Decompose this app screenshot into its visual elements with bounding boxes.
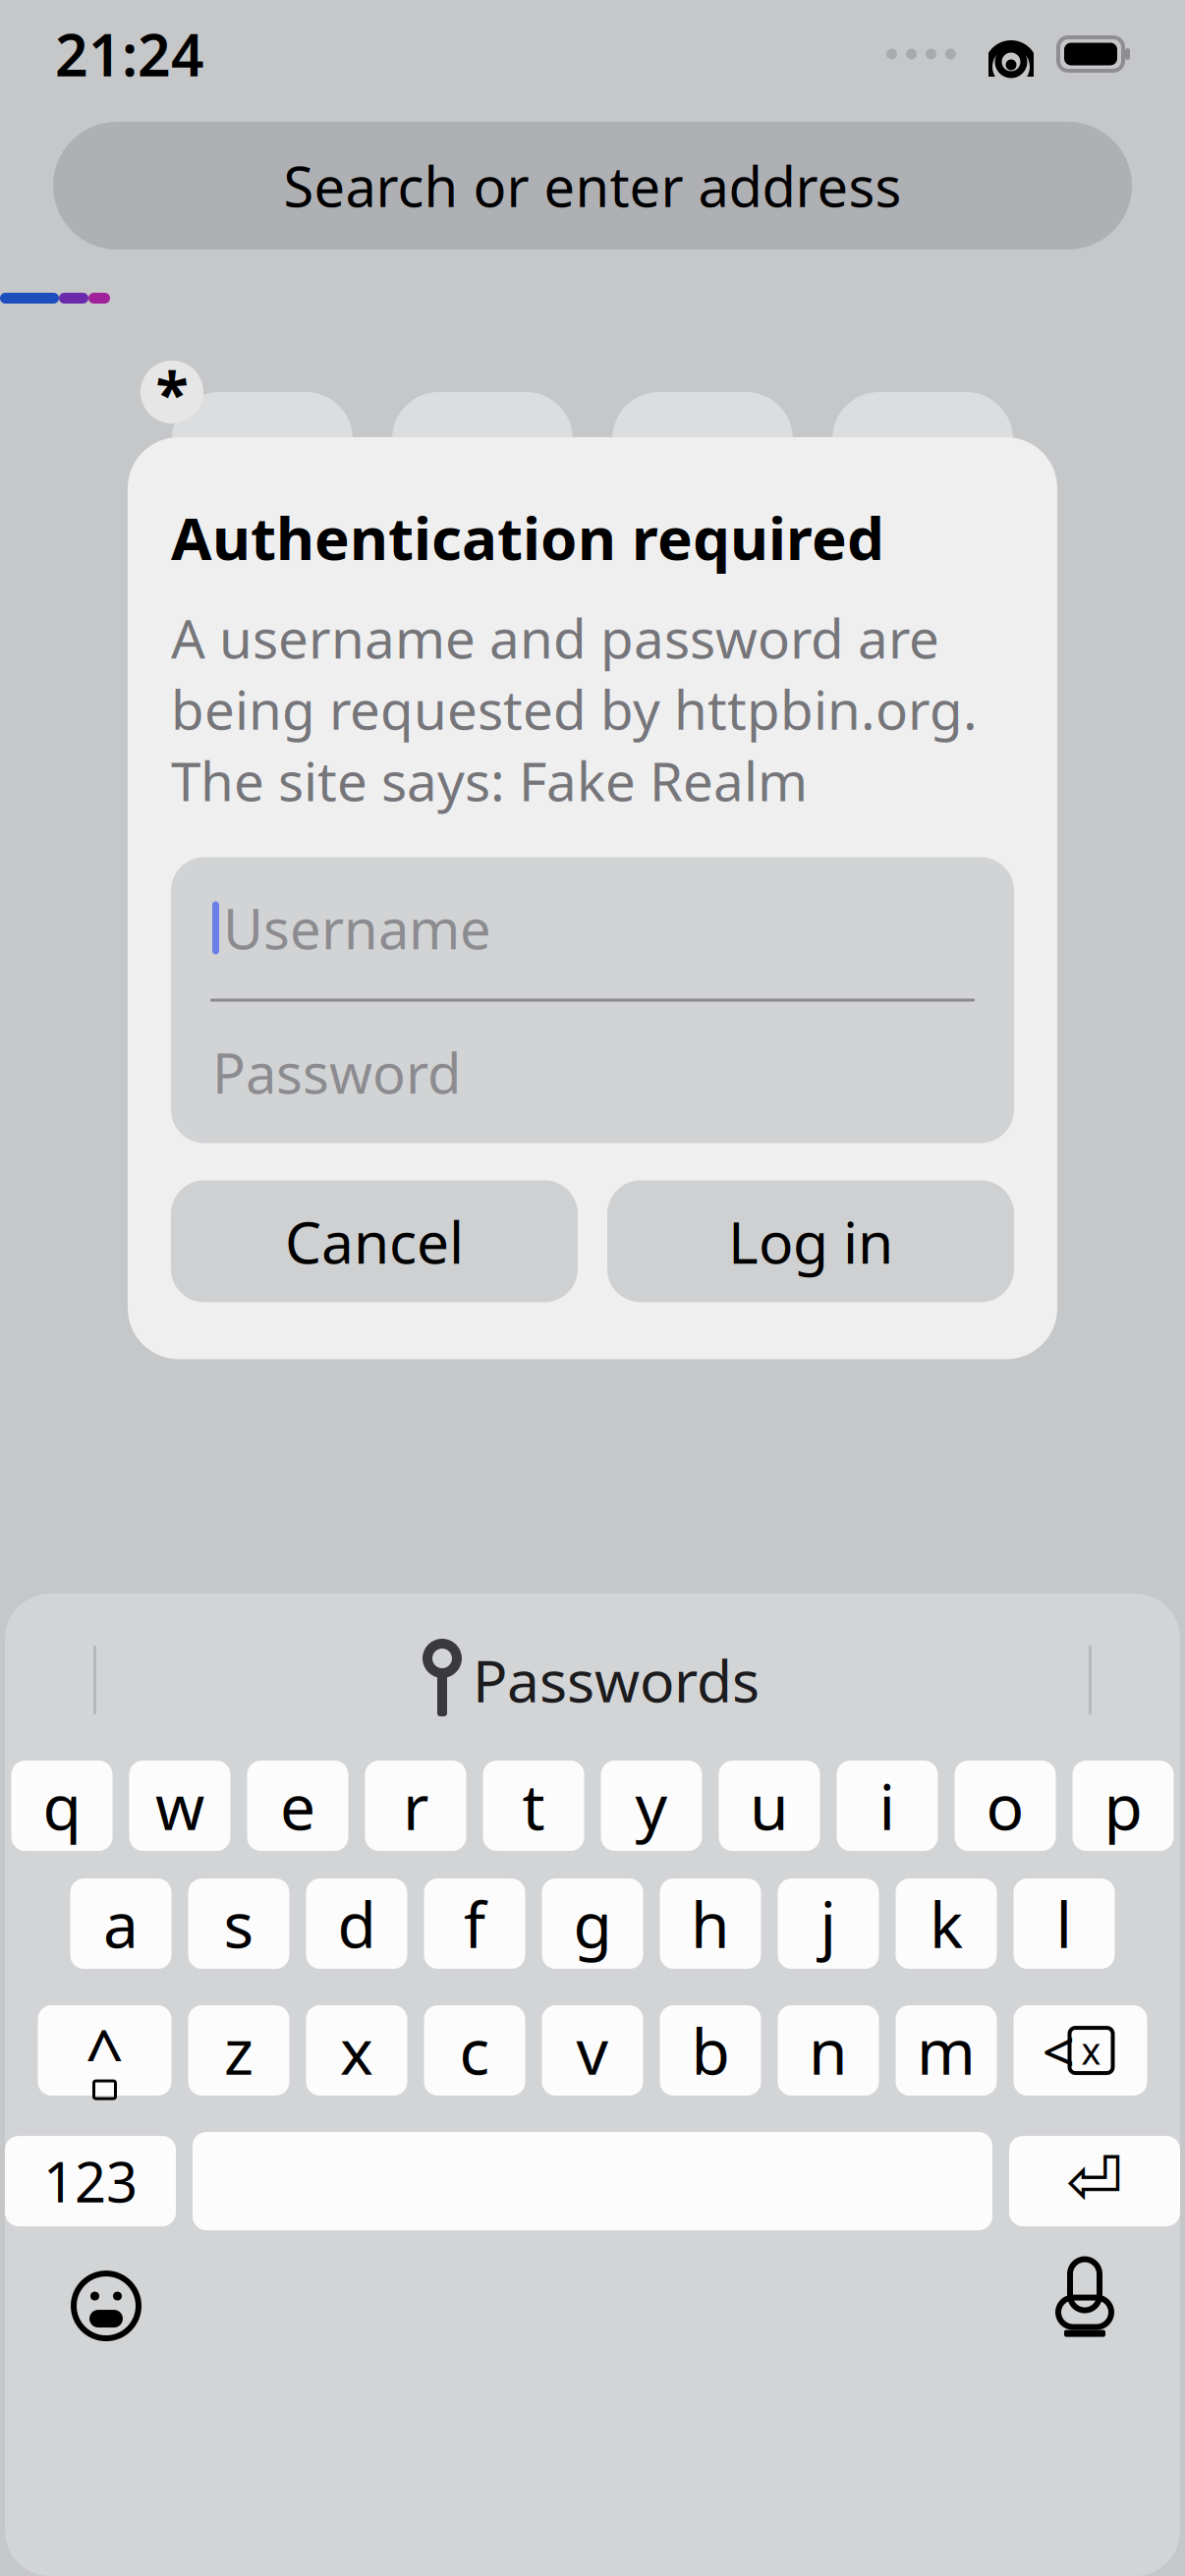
staticText: Cancel	[285, 1203, 464, 1280]
button[interactable]: y	[601, 1761, 702, 1851]
staticText: Google	[196, 590, 329, 643]
staticText: Password	[212, 1036, 461, 1109]
button[interactable]: h	[660, 1878, 761, 1969]
button[interactable]: 123	[5, 2136, 176, 2226]
staticText: k	[930, 1882, 963, 1965]
staticText: s	[224, 1882, 254, 1965]
button[interactable]: Search or enter address	[53, 122, 1132, 250]
staticText: h	[691, 1882, 730, 1965]
button[interactable]: b	[660, 2005, 761, 2096]
staticText: <	[1042, 2012, 1075, 2089]
staticText: y	[635, 1764, 668, 1848]
staticText: *	[156, 352, 188, 432]
button[interactable]: u	[719, 1761, 820, 1851]
button[interactable]: Delete	[1014, 2005, 1147, 2096]
staticText: Passwords	[473, 1642, 760, 1718]
staticText: z	[224, 2009, 254, 2092]
staticText: 21:24	[55, 16, 204, 92]
button[interactable]: Dictation	[1058, 2264, 1111, 2348]
staticText: Authentication required	[171, 498, 884, 576]
staticText: j	[820, 1882, 837, 1965]
staticText: o	[986, 1764, 1024, 1848]
staticText: Log in	[728, 1203, 893, 1280]
staticText: f	[464, 1882, 485, 1965]
button[interactable]: i	[837, 1761, 938, 1851]
button[interactable]: m	[896, 2005, 997, 2096]
staticText: i	[879, 1764, 896, 1848]
staticText: ^	[85, 2008, 124, 2099]
button[interactable]: a	[70, 1878, 171, 1969]
button[interactable]: Username field	[171, 857, 1014, 999]
button[interactable]: g	[542, 1878, 643, 1969]
button[interactable]: Passwords	[425, 1642, 760, 1718]
button[interactable]: Shift	[38, 1996, 171, 2105]
staticText: n	[809, 2009, 848, 2092]
button[interactable]: q	[11, 1761, 113, 1851]
button[interactable]: r	[365, 1761, 466, 1851]
button[interactable]: c	[424, 2005, 525, 2096]
staticText: l	[1056, 1882, 1072, 1965]
staticText: a	[103, 1882, 139, 1965]
staticText: q	[43, 1764, 81, 1848]
staticText: Wikipedia	[172, 882, 352, 935]
button[interactable]: Cancel	[171, 1180, 578, 1302]
staticText: Search or enter address	[283, 149, 902, 222]
staticText: t	[522, 1764, 545, 1848]
button[interactable]: k	[896, 1878, 997, 1969]
button[interactable]: z	[188, 2005, 289, 2096]
staticText: m	[917, 2009, 976, 2092]
staticText: p	[1104, 1764, 1142, 1848]
button[interactable]: p	[1072, 1761, 1174, 1851]
staticText: Yahoo	[425, 590, 539, 643]
button[interactable]: f	[424, 1878, 525, 1969]
button[interactable]: Return	[1009, 2136, 1180, 2226]
staticText: Bing	[660, 590, 745, 643]
button[interactable]: Password field	[171, 1002, 1014, 1143]
staticText: x	[1081, 2026, 1101, 2075]
button[interactable]: t	[483, 1761, 584, 1851]
staticText: x	[340, 2009, 373, 2092]
button[interactable]: Emoji	[74, 2274, 139, 2338]
button[interactable]: d	[306, 1878, 407, 1969]
staticText: Username	[223, 891, 491, 964]
button[interactable]: j	[778, 1878, 879, 1969]
staticText: d	[338, 1882, 376, 1965]
staticText: c	[459, 2009, 490, 2092]
button[interactable]: v	[542, 2005, 643, 2096]
button[interactable]: w	[129, 1761, 230, 1851]
button[interactable]: s	[188, 1878, 289, 1969]
staticText: Amazon	[847, 590, 998, 643]
button[interactable]: Log in	[607, 1180, 1014, 1302]
staticText: r	[403, 1764, 428, 1848]
staticText: 123	[43, 2145, 138, 2218]
staticText: u	[750, 1764, 789, 1848]
staticText: g	[573, 1882, 612, 1965]
staticText: e	[280, 1764, 315, 1848]
staticText: v	[576, 2009, 609, 2092]
button[interactable]: x	[306, 2005, 407, 2096]
staticText: A username and password are being reques…	[171, 602, 978, 816]
staticText: b	[691, 2009, 730, 2092]
button[interactable]: l	[1014, 1878, 1115, 1969]
button[interactable]: o	[955, 1761, 1056, 1851]
staticText: ⏎	[1066, 2142, 1123, 2220]
button[interactable]: e	[247, 1761, 348, 1851]
button[interactable]: n	[778, 2005, 879, 2096]
staticText: Twitter	[419, 882, 546, 935]
staticText: w	[155, 1764, 204, 1848]
